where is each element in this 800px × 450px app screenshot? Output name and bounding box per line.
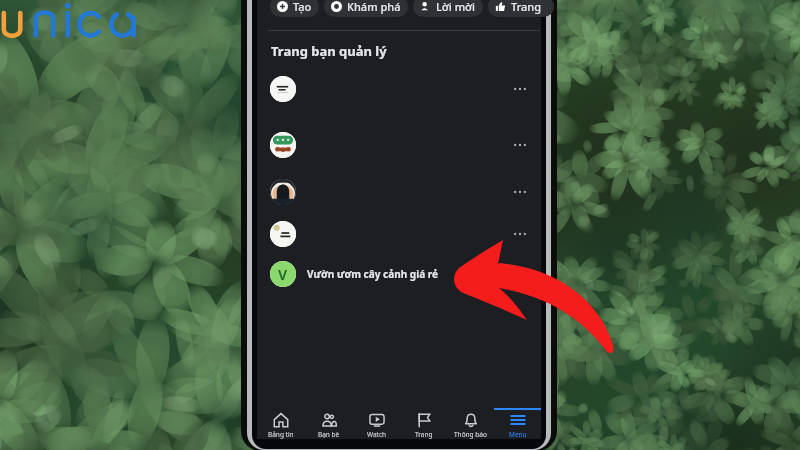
staticText: Tạo [293,0,312,14]
staticText: Trang đ [511,0,547,14]
staticText: Bảng tin [268,430,294,439]
button[interactable]: More options [257,214,541,254]
button[interactable]: Bảng tin [257,408,305,439]
button[interactable]: Watch [353,408,400,439]
button[interactable]: More options [257,125,541,165]
button[interactable]: More options [506,75,534,103]
button[interactable]: Lời mời [413,0,483,17]
staticText: Vườn ươm cây cảnh giá rẻ [307,267,438,281]
button[interactable]: More options [506,131,534,159]
button[interactable]: Khám phá [324,0,408,17]
button[interactable]: More options [257,69,541,109]
staticText: Trang [415,430,433,439]
button[interactable]: Menu [494,408,541,439]
staticText: Thông báo [454,430,487,439]
button[interactable]: Thông báo [447,408,494,439]
button[interactable]: V [257,254,541,294]
button[interactable]: More options [506,220,534,248]
staticText: Bạn bè [318,430,340,439]
button[interactable]: Trang đ [488,0,554,17]
staticText: Khám phá [347,0,401,14]
staticText: Watch [367,430,387,439]
staticText: Menu [509,430,527,439]
button[interactable]: Tạo [270,0,319,17]
staticText: Trang bạn quản lý [271,42,387,60]
staticText: V [278,265,288,284]
staticText: Lời mời [436,0,476,14]
button[interactable]: More options [257,172,541,212]
button[interactable]: Trang [400,408,447,439]
button[interactable]: More options [506,178,534,206]
button[interactable]: Bạn bè [305,408,353,439]
